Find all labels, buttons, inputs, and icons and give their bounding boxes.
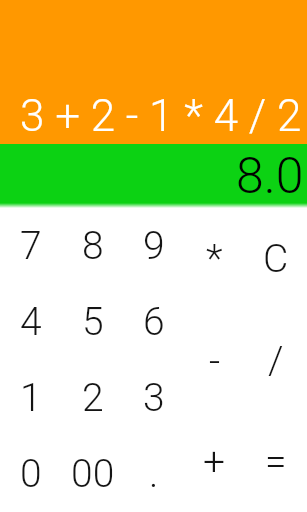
staticText: 7	[20, 223, 42, 269]
button[interactable]: 6	[123, 284, 184, 360]
staticText: 2	[82, 375, 104, 421]
button[interactable]: /	[245, 310, 307, 411]
staticText: +	[203, 439, 226, 485]
staticText: 8	[82, 223, 104, 269]
button[interactable]: 8	[62, 208, 123, 284]
staticText: -	[209, 338, 221, 384]
staticText: 00	[71, 451, 115, 497]
staticText: 8.0	[236, 147, 304, 206]
staticText: 4	[20, 299, 42, 345]
staticText: *	[206, 236, 223, 282]
staticText: 0	[20, 451, 42, 497]
button[interactable]: 9	[123, 208, 184, 284]
button[interactable]: +	[184, 411, 245, 512]
button[interactable]: 0	[0, 436, 62, 512]
staticText: /	[268, 338, 284, 384]
button[interactable]: .	[123, 436, 184, 512]
button[interactable]: 3	[123, 360, 184, 436]
staticText: =	[265, 439, 287, 485]
button[interactable]: =	[245, 411, 307, 512]
staticText: .	[149, 451, 159, 497]
button[interactable]: 1	[0, 360, 62, 436]
button[interactable]: 4	[0, 284, 62, 360]
button[interactable]: 5	[62, 284, 123, 360]
staticText: 3	[143, 375, 165, 421]
staticText: 5	[82, 299, 104, 345]
button[interactable]: C	[245, 208, 307, 310]
staticText: 6	[143, 299, 165, 345]
staticText: 3 + 2 - 1 * 4 / 2	[20, 90, 302, 142]
staticText: 1	[20, 375, 42, 421]
button[interactable]: 7	[0, 208, 62, 284]
staticText: C	[263, 236, 289, 282]
button[interactable]: -	[184, 310, 245, 411]
button[interactable]: *	[184, 208, 245, 310]
button[interactable]: 2	[62, 360, 123, 436]
staticText: 9	[143, 223, 165, 269]
button[interactable]: 00	[62, 436, 123, 512]
